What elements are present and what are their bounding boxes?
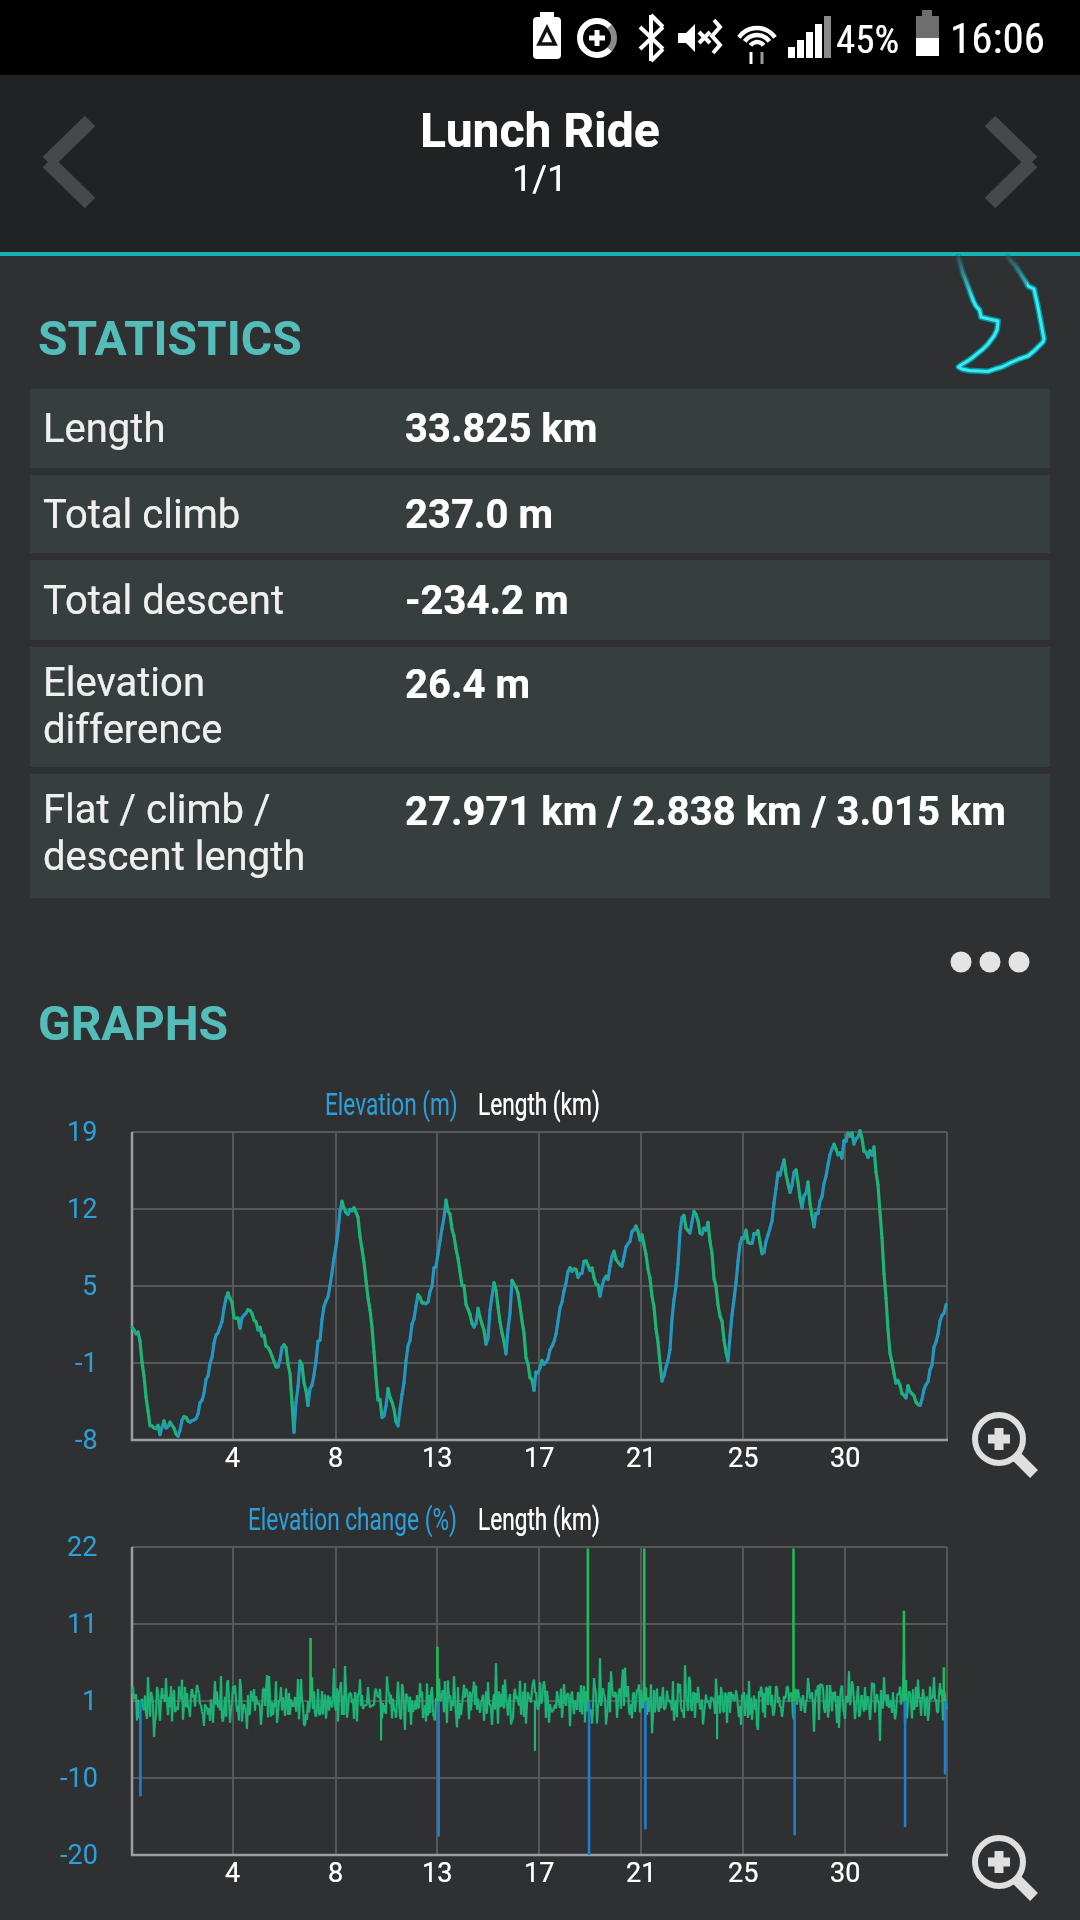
staticText: Lunch Ride — [420, 102, 660, 158]
staticText: 5 — [82, 1270, 98, 1302]
staticText: 8 — [328, 1857, 344, 1889]
button[interactable] — [966, 1838, 1042, 1904]
staticText: Flat / climb / — [43, 786, 271, 833]
staticText: 11 — [67, 1608, 98, 1640]
staticText: 237.0 m — [405, 491, 554, 538]
staticText: 21 — [626, 1857, 657, 1889]
button[interactable] — [966, 1415, 1042, 1481]
staticText: difference — [43, 706, 223, 753]
staticText: Elevation — [43, 659, 205, 706]
staticText: 25 — [728, 1857, 759, 1889]
staticText: -20 — [60, 1839, 98, 1871]
staticText: 4 — [225, 1442, 241, 1474]
staticText: 13 — [422, 1442, 453, 1474]
staticText: 17 — [524, 1442, 555, 1474]
button[interactable] — [970, 117, 1060, 207]
staticText: 13 — [422, 1857, 453, 1889]
staticText: STATISTICS — [38, 310, 302, 366]
staticText: -8 — [75, 1424, 98, 1456]
staticText: 27.971 km / 2.838 km / 3.015 km — [405, 788, 1006, 835]
staticText: -1 — [75, 1347, 98, 1379]
staticText: 1/1 — [512, 158, 568, 200]
button[interactable] — [935, 935, 1045, 987]
staticText: 19 — [67, 1116, 98, 1148]
staticText: 45% — [836, 17, 900, 63]
staticText: 25 — [728, 1442, 759, 1474]
staticText: 26.4 m — [405, 661, 531, 708]
staticText: 4 — [225, 1857, 241, 1889]
staticText: 22 — [67, 1531, 98, 1563]
staticText: 30 — [830, 1442, 861, 1474]
staticText: 30 — [830, 1857, 861, 1889]
staticText: 1 — [82, 1685, 98, 1717]
staticText: descent length — [43, 833, 306, 880]
staticText: GRAPHS — [38, 995, 229, 1051]
staticText: Length (km) — [478, 1086, 600, 1122]
staticText: 8 — [328, 1442, 344, 1474]
staticText: Length — [43, 405, 166, 452]
staticText: Length (km) — [478, 1501, 600, 1537]
staticText: 21 — [626, 1442, 657, 1474]
staticText: 17 — [524, 1857, 555, 1889]
staticText: 33.825 km — [405, 405, 598, 452]
button[interactable] — [20, 117, 110, 207]
staticText: -234.2 m — [405, 577, 569, 624]
staticText: -10 — [60, 1762, 98, 1794]
staticText: Elevation (m) — [325, 1086, 458, 1122]
staticText: 12 — [67, 1193, 98, 1225]
staticText: Total descent — [43, 577, 284, 624]
staticText: Elevation change (%) — [248, 1501, 457, 1537]
staticText: Total climb — [43, 491, 241, 538]
staticText: 16:06 — [950, 13, 1045, 63]
